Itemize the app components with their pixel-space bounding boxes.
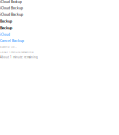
staticText: About 1 minute remaining	[0, 55, 38, 59]
staticText: Backup	[0, 25, 12, 30]
staticText: iCloud Backup	[0, 12, 23, 17]
staticText: About 1 minute remaining	[0, 50, 34, 53]
staticText: iCloud Backup	[0, 6, 23, 10]
staticText: Backup	[0, 19, 12, 23]
staticText: Backing Up…	[0, 45, 17, 48]
staticText: iCloud	[0, 32, 10, 36]
staticText: Cancel Backup	[0, 39, 24, 43]
staticText: iCloud Backup	[0, 0, 22, 4]
